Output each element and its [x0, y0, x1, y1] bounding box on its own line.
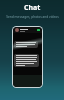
staticText: Send messages, photos and videos [6, 15, 59, 19]
staticText: Chat [24, 3, 41, 13]
